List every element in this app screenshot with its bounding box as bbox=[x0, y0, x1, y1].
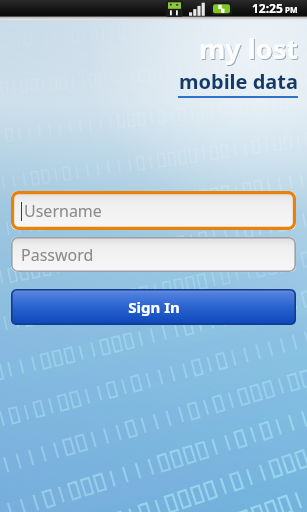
staticText: my lost bbox=[199, 30, 298, 67]
button[interactable]: Username bbox=[11, 191, 296, 230]
staticText: Username bbox=[24, 200, 102, 222]
button[interactable]: Password bbox=[11, 237, 296, 272]
staticText: my lost bbox=[200, 31, 299, 68]
staticText: mobile data bbox=[179, 68, 298, 95]
staticText: Password bbox=[21, 244, 94, 266]
button[interactable]: Sign In bbox=[11, 289, 296, 325]
staticText: PM bbox=[285, 4, 298, 15]
staticText: 12:25 bbox=[252, 0, 283, 16]
staticText: Sign In bbox=[128, 297, 180, 317]
